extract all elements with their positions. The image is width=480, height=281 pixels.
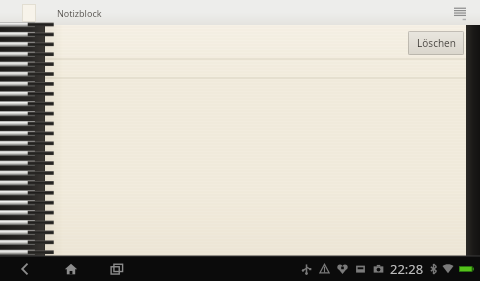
staticText: 22:28	[390, 260, 424, 278]
button[interactable]: Löschen	[408, 31, 464, 55]
staticText: Löschen	[417, 36, 456, 50]
other: App icon	[22, 4, 36, 22]
button[interactable]: Back	[10, 256, 40, 281]
button[interactable]: Menu	[448, 1, 472, 25]
button[interactable]: Home	[56, 256, 86, 281]
button[interactable]: Recent apps	[102, 256, 132, 281]
staticText: Notizblock	[57, 7, 102, 19]
